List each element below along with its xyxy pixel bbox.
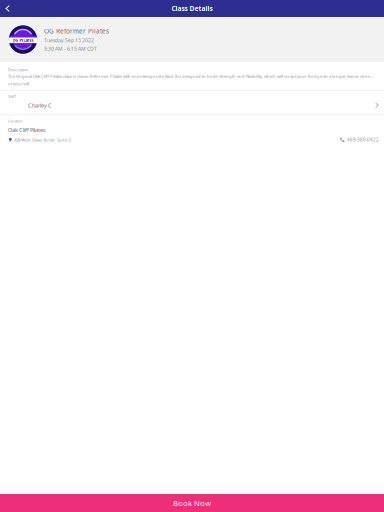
staticText: 469-380-0422 — [347, 137, 379, 143]
staticText: of yourself. — [8, 81, 30, 86]
staticText: Staff — [8, 93, 16, 99]
staticText: The Original Oak Cliff Pilates class is … — [8, 73, 376, 79]
button[interactable]: Charley C — [0, 99, 384, 115]
staticText: 428 West Davis Street, Suite 3 — [14, 137, 70, 143]
staticText: Tuesday Sep 13 2022 — [44, 37, 94, 44]
staticText: OG Reformer Pilates — [44, 27, 109, 35]
staticText: Oak Cliff Pilates — [8, 126, 46, 134]
staticText: Charley C — [28, 101, 52, 109]
staticText: 5:30 AM - 6:15 AM CDT — [44, 45, 97, 52]
button[interactable]: Book Now — [0, 494, 384, 512]
staticText: Location — [8, 118, 22, 124]
staticText: Description — [8, 67, 28, 72]
button[interactable]: Back — [0, 2, 15, 15]
staticText: OG PILATES — [12, 38, 33, 43]
staticText: Book Now — [173, 498, 211, 508]
staticText: Class Details — [171, 4, 212, 13]
